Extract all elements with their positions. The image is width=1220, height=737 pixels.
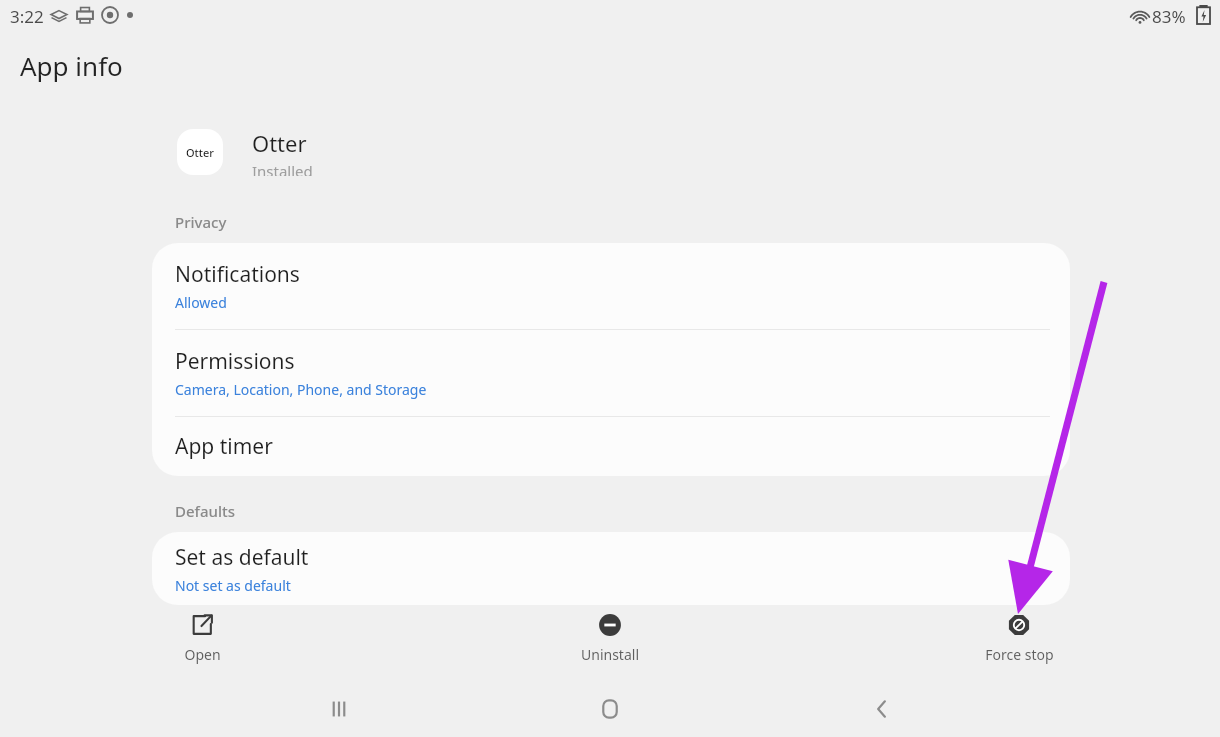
- staticText: App info: [20, 48, 123, 83]
- button[interactable]: Recents: [299, 684, 379, 734]
- staticText: Defaults: [175, 501, 236, 521]
- staticText: Open: [184, 645, 221, 664]
- staticText: Allowed: [175, 293, 227, 312]
- staticText: 3:22: [10, 5, 44, 28]
- button[interactable]: Notifications: [152, 243, 1070, 329]
- staticText: 83%: [1152, 5, 1186, 28]
- staticText: Otter: [252, 128, 307, 158]
- staticText: Installed: [252, 161, 313, 176]
- button[interactable]: Uninstall: [540, 612, 680, 672]
- button[interactable]: App timer: [152, 417, 1070, 475]
- button[interactable]: Home: [570, 684, 650, 734]
- button[interactable]: Set as default: [152, 532, 1070, 605]
- staticText: Not set as default: [175, 576, 291, 595]
- staticText: Set as default: [175, 543, 309, 572]
- button[interactable]: Back: [842, 684, 922, 734]
- staticText: Otter: [186, 145, 215, 160]
- staticText: Notifications: [175, 260, 300, 289]
- button[interactable]: Permissions: [152, 330, 1070, 416]
- button[interactable]: Open: [132, 612, 272, 672]
- button[interactable]: Force stop: [949, 612, 1089, 672]
- staticText: App timer: [175, 432, 273, 461]
- staticText: Force stop: [985, 645, 1054, 664]
- staticText: Privacy: [175, 212, 227, 232]
- staticText: Permissions: [175, 347, 295, 376]
- staticText: Uninstall: [581, 645, 639, 664]
- staticText: Camera, Location, Phone, and Storage: [175, 380, 427, 399]
